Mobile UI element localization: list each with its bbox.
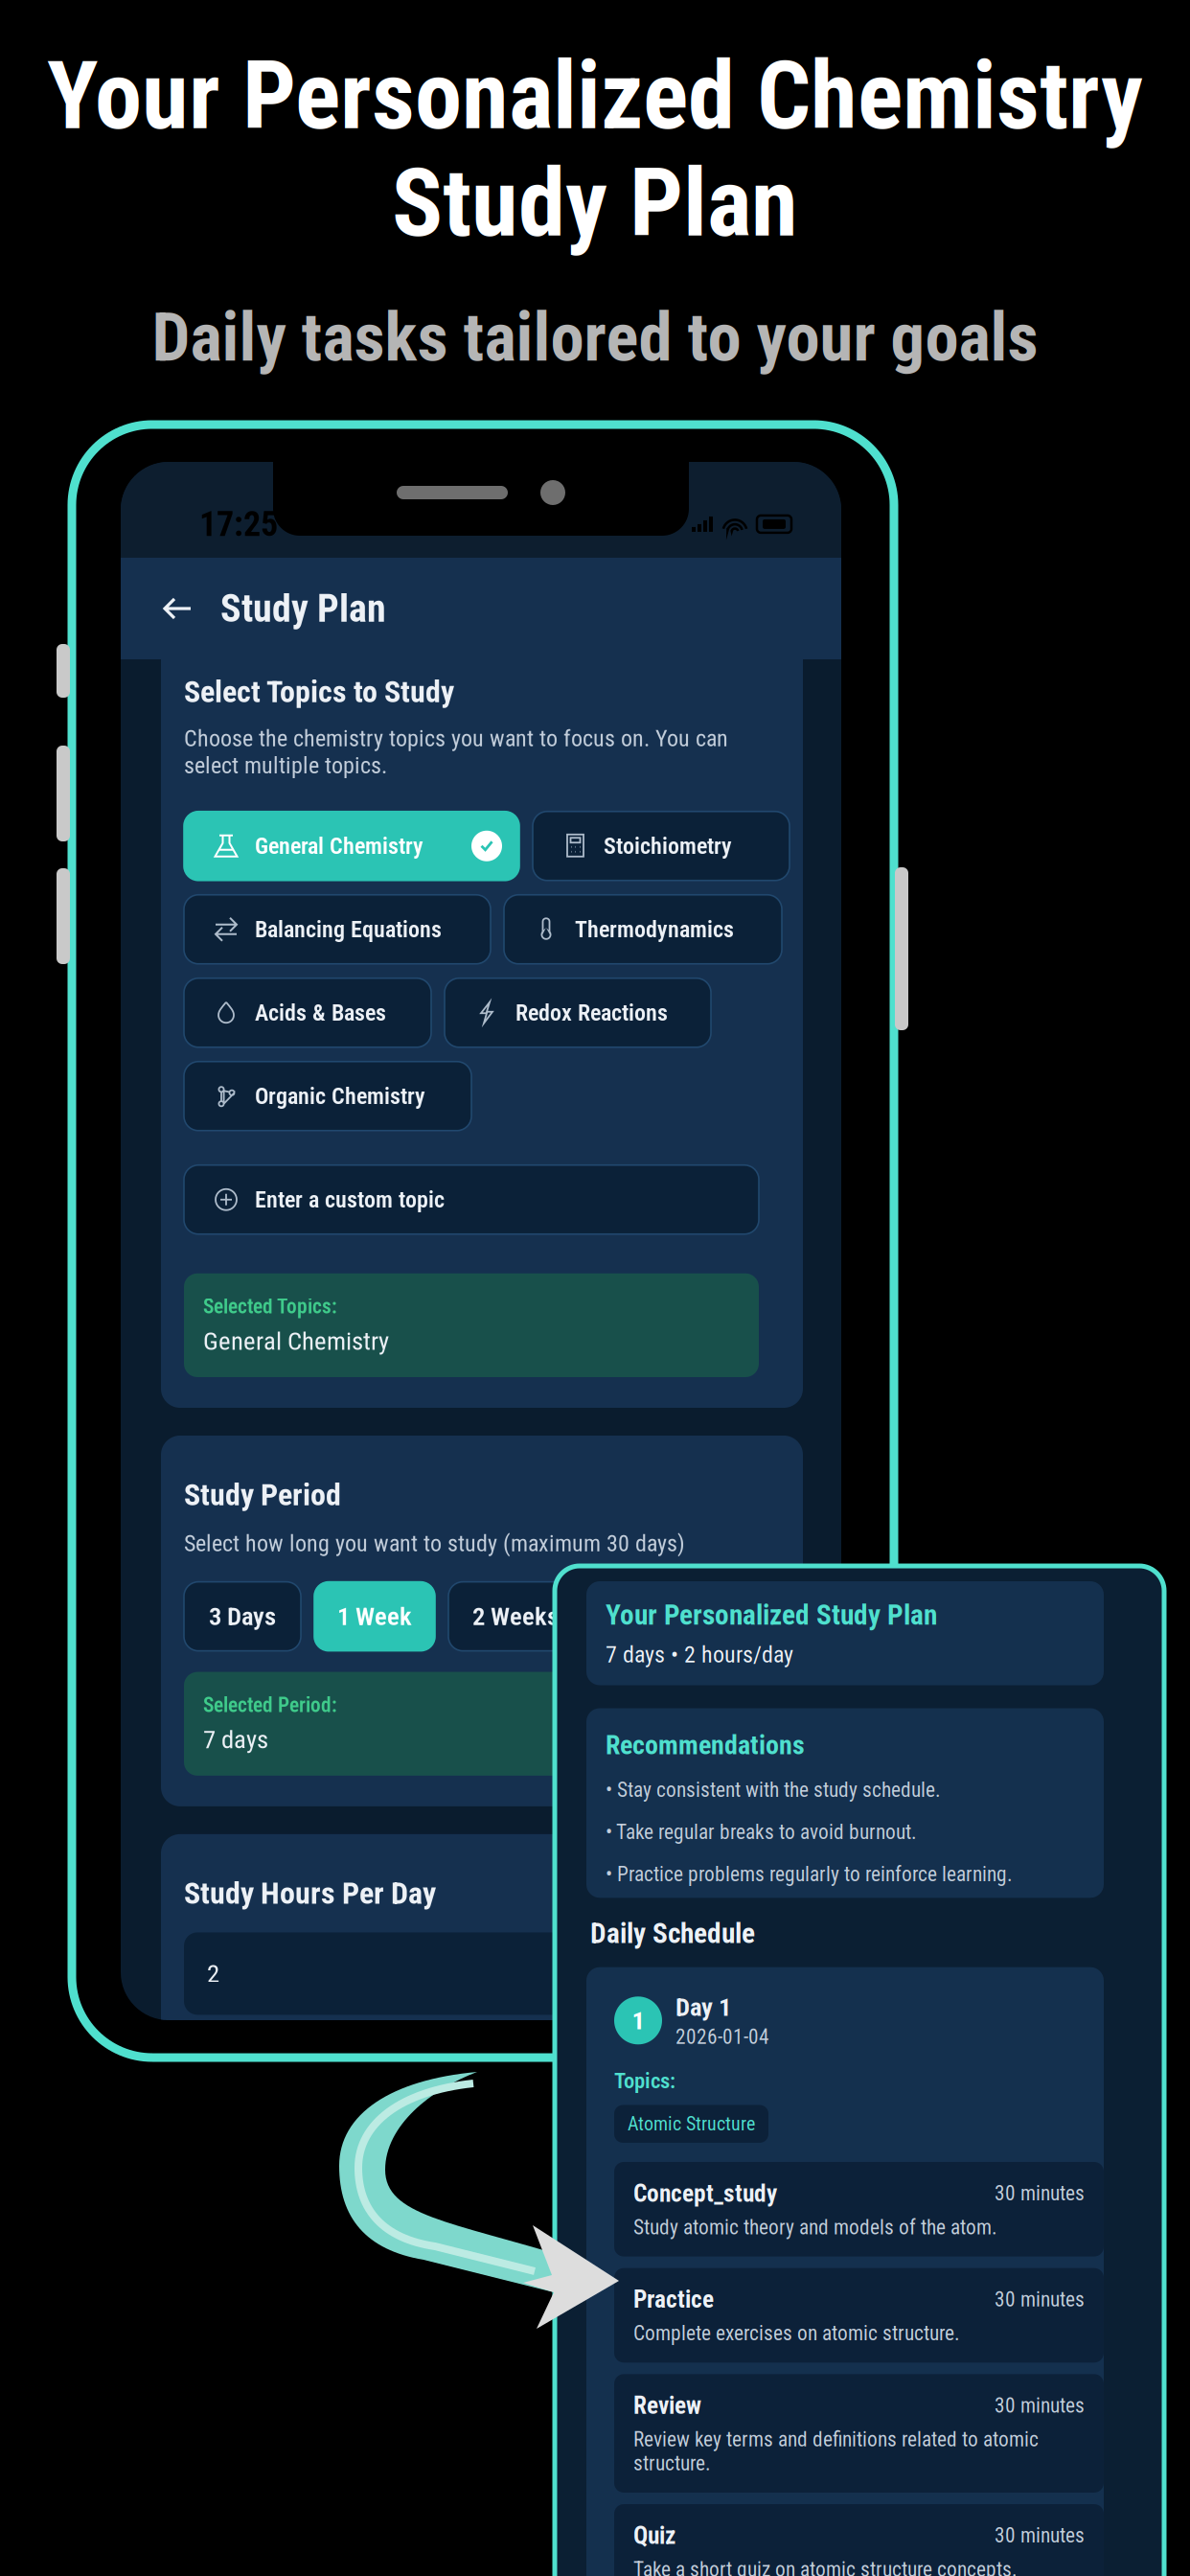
button[interactable]: Stoichiometry xyxy=(533,812,790,881)
staticText: Concept_study xyxy=(633,2179,777,2208)
staticText: • Stay consistent with the study schedul… xyxy=(606,1778,941,1802)
staticText: Practice xyxy=(633,2285,714,2314)
staticText: Study Plan xyxy=(392,148,798,259)
staticText: Your Personalized Chemistry xyxy=(47,40,1143,151)
staticText: 30 minutes xyxy=(995,2181,1085,2205)
staticText: Daily Schedule xyxy=(590,1917,755,1950)
staticText: 2 xyxy=(207,1959,219,1989)
staticText: 17:25 xyxy=(199,504,278,544)
staticText: Study Hours Per Day xyxy=(184,1875,436,1911)
staticText: Thermodynamics xyxy=(575,916,734,943)
staticText: 30 minutes xyxy=(995,2524,1085,2548)
staticText: 30 minutes xyxy=(995,2394,1085,2417)
staticText: Select how long you want to study (maxim… xyxy=(184,1530,685,1557)
staticText: Review xyxy=(633,2391,701,2420)
staticText: Organic Chemistry xyxy=(255,1083,425,1110)
staticText: Topics: xyxy=(614,2068,675,2093)
button[interactable]: 3 Days xyxy=(184,1582,301,1651)
staticText: Take a short quiz on atomic structure co… xyxy=(633,2558,1018,2576)
staticText: • Practice problems regularly to reinfor… xyxy=(606,1862,1013,1886)
staticText: Select Topics to Study xyxy=(184,674,454,710)
staticText: Selected Topics: xyxy=(203,1295,337,1318)
staticText: Study Plan xyxy=(220,586,386,631)
staticText: 3 Days xyxy=(209,1601,276,1631)
staticText: General Chemistry xyxy=(255,833,423,859)
staticText: Balancing Equations xyxy=(255,916,442,943)
staticText: Quiz xyxy=(633,2521,675,2550)
staticText: Study atomic theory and models of the at… xyxy=(633,2215,997,2239)
staticText: Study Period xyxy=(184,1477,341,1513)
staticText: General Chemistry xyxy=(203,1326,389,1356)
staticText: Recommendations xyxy=(606,1729,805,1761)
staticText: Complete exercises on atomic structure. xyxy=(633,2321,960,2345)
button[interactable]: Thermodynamics xyxy=(504,895,782,964)
staticText: Stoichiometry xyxy=(604,833,732,859)
button[interactable]: Enter a custom topic xyxy=(184,1165,759,1234)
button[interactable]: Organic Chemistry xyxy=(184,1062,471,1131)
staticText: 2 Weeks xyxy=(472,1601,559,1631)
staticText: Daily tasks tailored to your goals xyxy=(152,298,1038,377)
staticText: Atomic Structure xyxy=(628,2113,755,2135)
staticText: 2026-01-04 xyxy=(675,2025,769,2049)
staticText: • Take regular breaks to avoid burnout. xyxy=(606,1820,917,1844)
button[interactable]: 2 Weeks xyxy=(448,1582,583,1651)
staticText: 30 minutes xyxy=(995,2288,1085,2311)
staticText: 7 days xyxy=(203,1725,268,1755)
staticText: 1 xyxy=(632,2006,644,2035)
button[interactable]: Redox Reactions xyxy=(445,978,711,1047)
staticText: Your Personalized Study Plan xyxy=(606,1598,937,1631)
staticText: Redox Reactions xyxy=(515,999,668,1026)
staticText: Review key terms and definitions related… xyxy=(633,2427,1039,2475)
button[interactable]: General Chemistry xyxy=(184,812,519,881)
staticText: Acids & Bases xyxy=(255,999,386,1026)
staticText: Day 1 xyxy=(675,1992,731,2022)
staticText: 7 days • 2 hours/day xyxy=(606,1641,793,1668)
staticText: Selected Period: xyxy=(203,1693,337,1717)
staticText: Enter a custom topic xyxy=(255,1186,445,1213)
staticText: 1 Week xyxy=(337,1601,412,1631)
button[interactable]: Acids & Bases xyxy=(184,978,431,1047)
button[interactable]: Balancing Equations xyxy=(184,895,491,964)
button[interactable]: Back xyxy=(157,587,199,630)
button[interactable]: 1 Week xyxy=(314,1582,435,1651)
staticText: Choose the chemistry topics you want to … xyxy=(184,725,728,779)
